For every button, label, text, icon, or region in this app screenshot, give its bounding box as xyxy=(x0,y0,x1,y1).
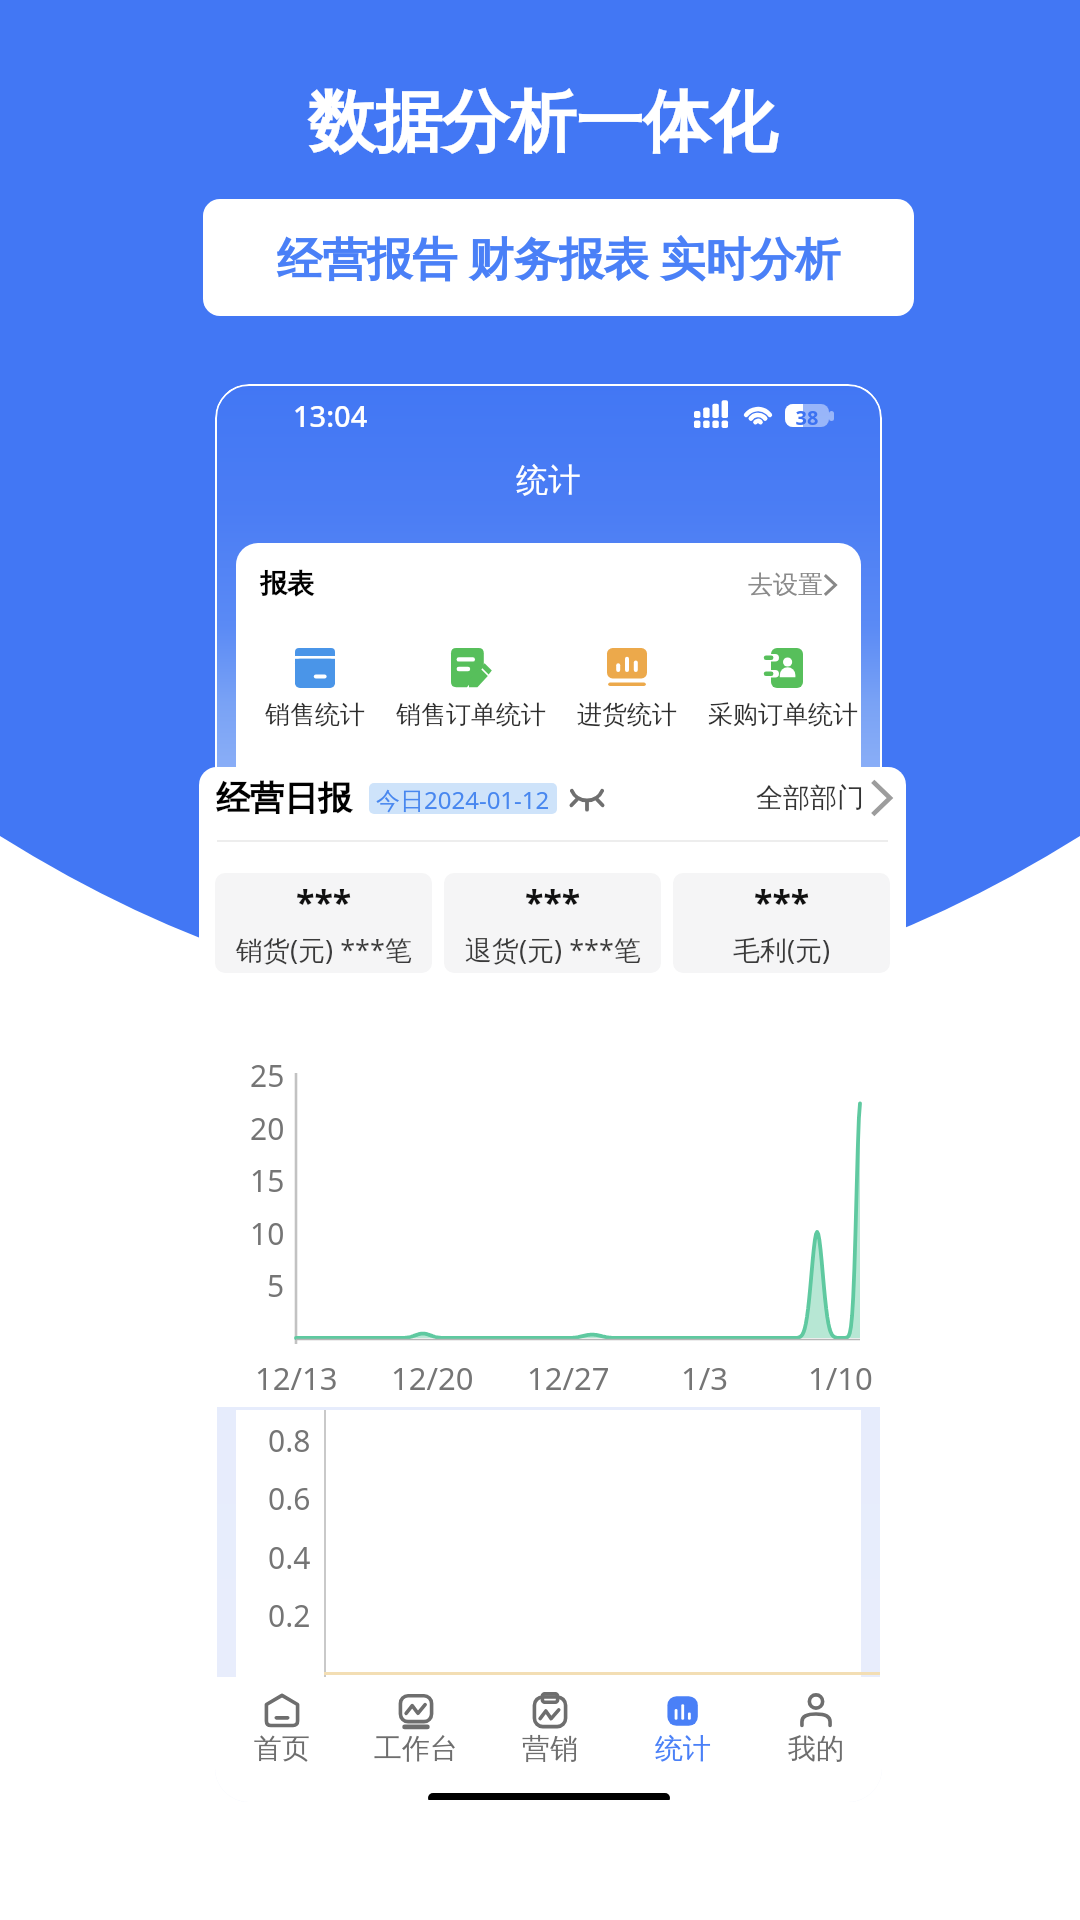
staticText: 首页 xyxy=(254,1731,310,1766)
button[interactable]: 工作台 xyxy=(349,1692,483,1766)
staticText: 20 xyxy=(250,1108,285,1149)
staticText: 报表 xyxy=(260,567,314,601)
button[interactable]: 销售订单统计 xyxy=(393,648,549,730)
staticText: 营销 xyxy=(522,1731,578,1766)
staticText: 38 xyxy=(785,404,829,427)
staticText: 数据分析一体化 xyxy=(308,80,777,164)
button[interactable]: Hide amounts xyxy=(568,785,606,811)
staticText: *** xyxy=(296,879,352,925)
staticText: 销售订单统计 xyxy=(396,699,546,730)
staticText: 退货(元) ***笔 xyxy=(465,931,641,968)
staticText: 销售统计 xyxy=(265,699,365,730)
staticText: 12/13 xyxy=(255,1357,338,1399)
staticText: 10 xyxy=(250,1213,285,1254)
staticText: 统计 xyxy=(655,1731,711,1766)
staticText: 经营日报 xyxy=(216,777,352,820)
staticText: 15 xyxy=(250,1160,285,1201)
button[interactable]: 采购订单统计 xyxy=(705,648,861,730)
button[interactable]: 我的 xyxy=(749,1692,882,1766)
staticText: 0.2 xyxy=(268,1595,311,1636)
button[interactable]: 全部部门 xyxy=(756,780,892,816)
staticText: 0.6 xyxy=(268,1478,311,1519)
button[interactable]: 经营报告 财务报表 实时分析 xyxy=(203,199,914,316)
button[interactable]: 进货统计 xyxy=(549,648,705,730)
button[interactable]: 首页 xyxy=(215,1692,349,1766)
staticText: 我的 xyxy=(788,1731,844,1766)
staticText: 12/27 xyxy=(527,1357,610,1399)
staticText: 12/20 xyxy=(391,1357,474,1399)
staticText: 5 xyxy=(267,1265,285,1306)
button[interactable]: 去设置 xyxy=(748,569,837,600)
button[interactable]: 营销 xyxy=(483,1692,616,1766)
staticText: 1/10 xyxy=(808,1357,873,1399)
button[interactable]: *** xyxy=(444,873,661,973)
button[interactable]: *** xyxy=(673,873,890,973)
staticText: 销货(元) ***笔 xyxy=(236,931,412,968)
staticText: 采购订单统计 xyxy=(708,699,858,730)
staticText: *** xyxy=(754,879,810,925)
button[interactable]: 销售统计 xyxy=(236,648,393,730)
staticText: 经营报告 财务报表 实时分析 xyxy=(277,227,841,288)
button[interactable]: 统计 xyxy=(616,1692,749,1766)
staticText: 统计 xyxy=(215,460,882,500)
staticText: 13:04 xyxy=(293,396,368,435)
staticText: 0.4 xyxy=(268,1537,311,1578)
button[interactable]: 今日2024-01-12 xyxy=(369,783,557,814)
button[interactable]: *** xyxy=(215,873,432,973)
staticText: 工作台 xyxy=(374,1731,458,1766)
staticText: *** xyxy=(525,879,581,925)
staticText: 毛利(元) xyxy=(733,931,831,968)
staticText: 1/3 xyxy=(681,1357,728,1399)
staticText: 0.8 xyxy=(268,1420,311,1461)
staticText: 进货统计 xyxy=(577,699,677,730)
staticText: 今日2024-01-12 xyxy=(376,783,550,814)
staticText: 25 xyxy=(250,1055,285,1096)
staticText: 去设置 xyxy=(748,569,823,600)
staticText: 全部部门 xyxy=(756,781,864,815)
